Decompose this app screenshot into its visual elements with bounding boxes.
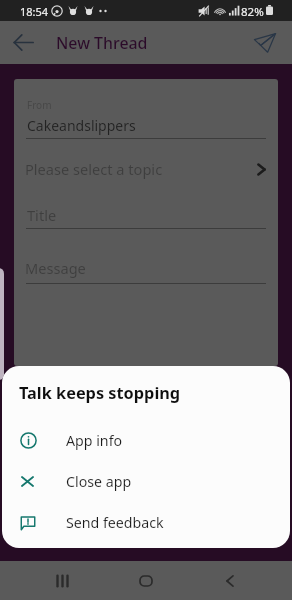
staticText: New Thread bbox=[56, 32, 148, 54]
button[interactable]: Recents bbox=[40, 561, 84, 600]
button[interactable]: Send bbox=[249, 27, 281, 59]
staticText: Title bbox=[27, 205, 57, 225]
staticText: Please select a topic bbox=[25, 159, 163, 179]
button[interactable]: Home bbox=[124, 561, 168, 600]
staticText: 18:54 bbox=[20, 4, 49, 19]
button[interactable]: Send feedback bbox=[2, 502, 290, 543]
staticText: Cakeandslippers bbox=[27, 116, 136, 135]
button[interactable]: App info bbox=[2, 420, 290, 461]
staticText: From bbox=[27, 98, 52, 112]
staticText: Close app bbox=[66, 472, 132, 491]
button[interactable]: Please select a topic bbox=[26, 152, 268, 186]
button[interactable]: Close app bbox=[2, 461, 290, 502]
button[interactable]: Back bbox=[7, 26, 39, 58]
staticText: Message bbox=[25, 258, 86, 278]
staticText: 82% bbox=[241, 4, 264, 20]
staticText: Send feedback bbox=[66, 513, 164, 532]
staticText: Talk keeps stopping bbox=[19, 382, 181, 404]
button[interactable]: Back bbox=[208, 561, 252, 600]
staticText: App info bbox=[66, 431, 123, 450]
